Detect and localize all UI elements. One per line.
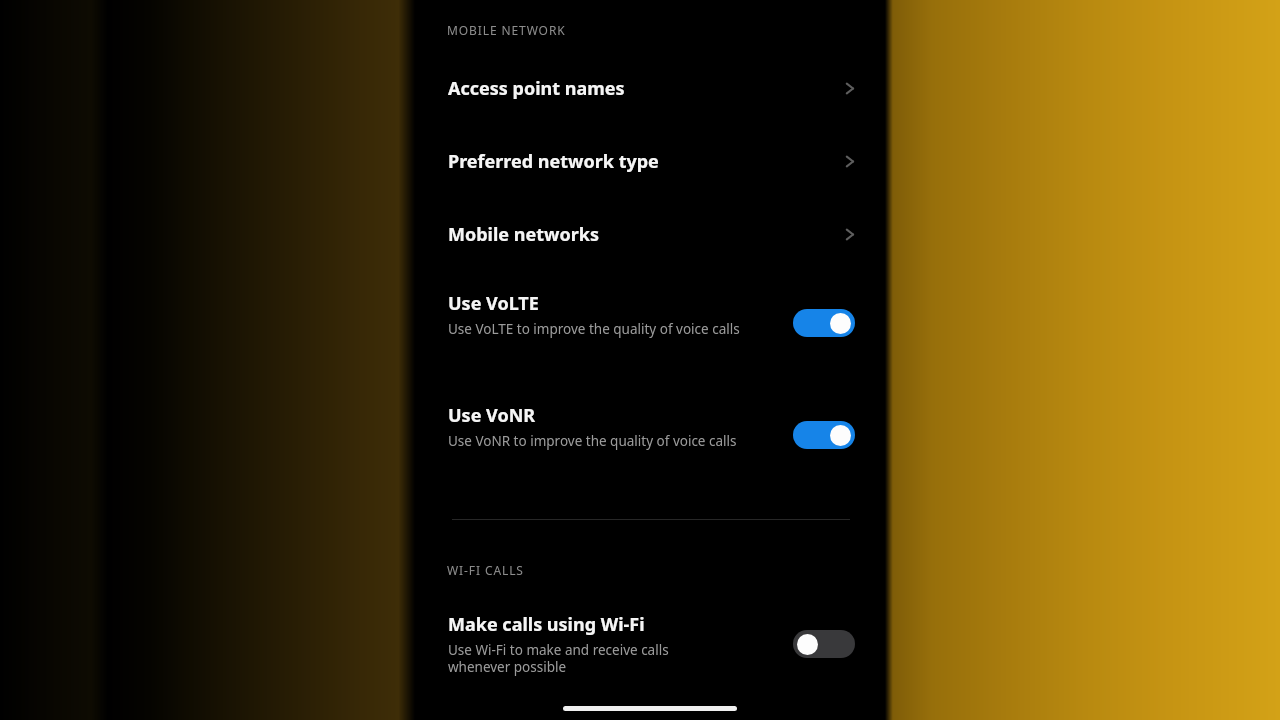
staticText: Use VoNR to improve the quality of voice… [448,432,737,450]
staticText: Use VoLTE [448,291,539,316]
staticText: Access point names [448,76,625,101]
button[interactable]: Switch on [793,421,855,449]
staticText: MOBILE NETWORK [447,22,566,38]
staticText: Use VoNR [448,403,536,428]
button[interactable]: Mobile networks [415,219,885,249]
other: Access point names [842,81,857,96]
button[interactable]: Switch off [793,630,855,658]
button[interactable]: Use VoLTE [415,291,885,363]
staticText: Make calls using Wi-Fi [448,612,645,637]
staticText: Use Wi-Fi to make and receive calls when… [448,641,723,676]
button[interactable]: Preferred network type [415,146,885,176]
staticText: Preferred network type [448,149,659,174]
button[interactable]: Access point names [415,73,885,103]
button[interactable]: Use VoNR [415,403,885,475]
staticText: WI-FI CALLS [447,562,524,578]
other: Preferred network type [842,154,857,169]
button[interactable]: Make calls using Wi-Fi [415,612,885,684]
other: Mobile networks [842,227,857,242]
staticText: Use VoLTE to improve the quality of voic… [448,320,740,338]
button[interactable]: Switch on [793,309,855,337]
staticText: Mobile networks [448,222,599,247]
